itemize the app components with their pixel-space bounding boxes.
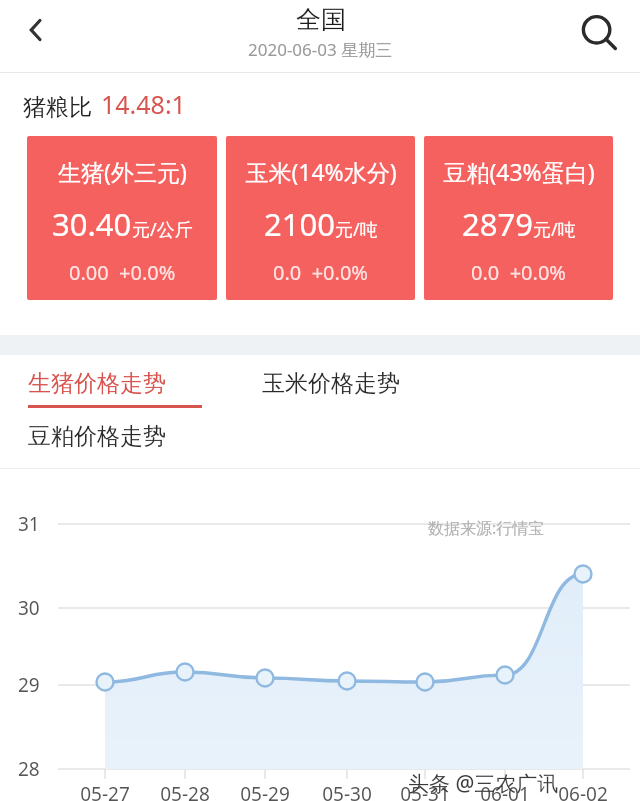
button[interactable]: 生猪价格走势: [26, 363, 204, 414]
staticText: 05-28: [151, 781, 219, 801]
staticText: 豆粕价格走势: [28, 422, 166, 451]
staticText: 0.00 +0.0%: [69, 259, 176, 286]
staticText: 05-30: [313, 781, 381, 801]
button[interactable]: Back: [8, 2, 64, 58]
staticText: 0.0 +0.0%: [273, 259, 368, 286]
staticText: 30.40: [52, 203, 132, 245]
staticText: 玉米(14%水分): [245, 156, 397, 187]
staticText: 05-29: [231, 781, 299, 801]
staticText: 全国: [296, 4, 346, 35]
staticText: 05-27: [71, 781, 139, 801]
staticText: 29: [18, 672, 40, 698]
staticText: 猪粮比: [23, 93, 92, 122]
staticText: 元/吨: [533, 217, 576, 242]
button[interactable]: Search: [568, 2, 630, 64]
button[interactable]: 豆粕价格走势: [26, 416, 204, 464]
staticText: 05-31: [391, 781, 459, 801]
staticText: 14.48:1: [101, 87, 186, 121]
staticText: 06-02: [549, 781, 617, 801]
button[interactable]: 玉米(14%水分): [226, 136, 415, 300]
staticText: 0.0 +0.0%: [471, 259, 566, 286]
staticText: 06-01: [471, 781, 539, 801]
staticText: 元/吨: [335, 217, 378, 242]
staticText: 豆粕(43%蛋白): [443, 156, 595, 187]
staticText: 2879: [462, 203, 533, 245]
staticText: 生猪(外三元): [58, 156, 187, 187]
staticText: 28: [18, 756, 40, 782]
staticText: 数据来源:行情宝: [428, 517, 545, 539]
button[interactable]: 豆粕(43%蛋白): [424, 136, 613, 300]
button[interactable]: 生猪(外三元): [27, 136, 217, 300]
staticText: 30: [18, 595, 40, 621]
button[interactable]: 玉米价格走势: [260, 363, 438, 411]
staticText: 2100: [264, 203, 335, 245]
staticText: 头条 @三农广讯: [408, 769, 559, 798]
staticText: 生猪价格走势: [28, 369, 166, 398]
staticText: 31: [18, 511, 40, 537]
staticText: 2020-06-03 星期三: [248, 38, 393, 61]
staticText: 玉米价格走势: [262, 369, 400, 398]
staticText: 元/公斤: [132, 217, 193, 242]
